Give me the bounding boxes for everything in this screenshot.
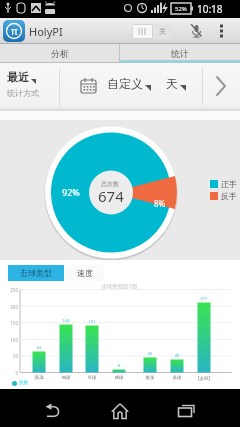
staticText: 接杀 xyxy=(138,375,162,381)
staticText: HolyPI xyxy=(29,24,63,39)
staticText: 挑球 xyxy=(107,375,131,381)
staticText: [全部] xyxy=(192,375,216,381)
staticText: 50 xyxy=(4,353,18,359)
staticText: 211 xyxy=(196,296,212,301)
staticText: 正手 xyxy=(221,179,237,189)
button[interactable] xyxy=(214,21,230,41)
staticText: 63 xyxy=(31,345,47,350)
staticText: 150 xyxy=(4,320,18,326)
staticText: 674 xyxy=(98,186,124,206)
staticText: 高远 xyxy=(27,375,51,381)
button[interactable]: 自定义 xyxy=(107,76,152,91)
staticText: 统计 xyxy=(171,48,189,59)
staticText: π xyxy=(11,24,18,38)
staticText: 100 xyxy=(4,337,18,343)
staticText: 8 xyxy=(111,363,127,368)
staticText: 反手 xyxy=(221,191,237,201)
staticText: 次数 xyxy=(19,380,28,386)
staticText: 关 xyxy=(153,27,172,36)
button[interactable] xyxy=(102,398,138,424)
staticText: 92% xyxy=(62,186,80,198)
button[interactable]: 统计 xyxy=(120,44,240,63)
staticText: 击球类型统计图 xyxy=(102,283,137,289)
staticText: 0 xyxy=(4,370,18,376)
staticText: 抽球 xyxy=(54,375,78,381)
staticText: 144 xyxy=(58,318,74,323)
staticText: 最近 xyxy=(7,70,29,84)
staticText: 击球类型 xyxy=(20,268,52,278)
staticText: 45 xyxy=(142,351,158,356)
button[interactable]: 天 xyxy=(166,76,187,91)
staticText: 吊球 xyxy=(80,375,104,381)
button[interactable] xyxy=(208,71,236,103)
staticText: 天 xyxy=(166,76,178,91)
button[interactable]: π xyxy=(3,20,25,42)
staticText: 141 xyxy=(84,319,100,324)
staticText: 250 xyxy=(4,287,18,293)
staticText: 速度 xyxy=(77,268,93,278)
button[interactable]: 击球类型 xyxy=(8,265,64,281)
staticText: 自定义 xyxy=(107,76,143,91)
staticText: 统计方式 xyxy=(7,88,39,98)
staticText: 52% xyxy=(175,5,187,13)
button[interactable] xyxy=(36,398,72,424)
staticText: 40 xyxy=(169,353,185,358)
staticText: 杀球 xyxy=(165,375,189,381)
staticText: 200 xyxy=(4,304,18,310)
button[interactable]: 关 xyxy=(132,24,172,39)
button[interactable]: 分析 xyxy=(0,44,119,63)
staticText: 总次数 xyxy=(101,180,119,188)
staticText: 10:18 xyxy=(197,2,223,16)
button[interactable] xyxy=(168,398,204,424)
staticText: 8% xyxy=(154,198,166,209)
staticText: 分析 xyxy=(51,48,69,59)
button[interactable] xyxy=(188,22,204,40)
button[interactable]: 最近 xyxy=(7,70,39,98)
button[interactable]: 速度 xyxy=(65,265,104,281)
